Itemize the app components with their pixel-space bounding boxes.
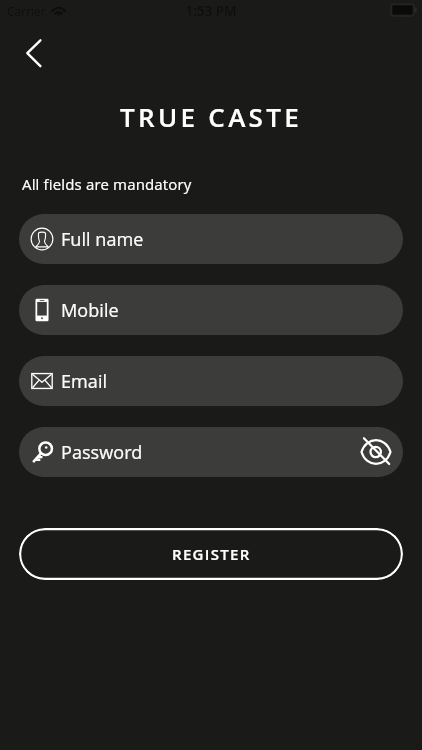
staticText: Carrier [7,3,46,19]
button[interactable]: Mobile [19,285,403,335]
staticText: All fields are mandatory [22,174,192,194]
staticText: TRUE CASTE [0,99,422,134]
button[interactable]: Show password [354,427,398,477]
button[interactable]: Password [19,427,403,477]
staticText: 1:53 PM [0,2,422,20]
button[interactable]: Back [10,29,58,77]
staticText: Password [61,440,143,465]
staticText: Mobile [61,298,119,323]
staticText: Email [61,369,108,394]
button[interactable]: REGISTER [19,528,403,580]
button[interactable]: Full name [19,214,403,264]
staticText: Full name [61,227,144,252]
staticText: REGISTER [172,544,251,564]
button[interactable]: Email [19,356,403,406]
